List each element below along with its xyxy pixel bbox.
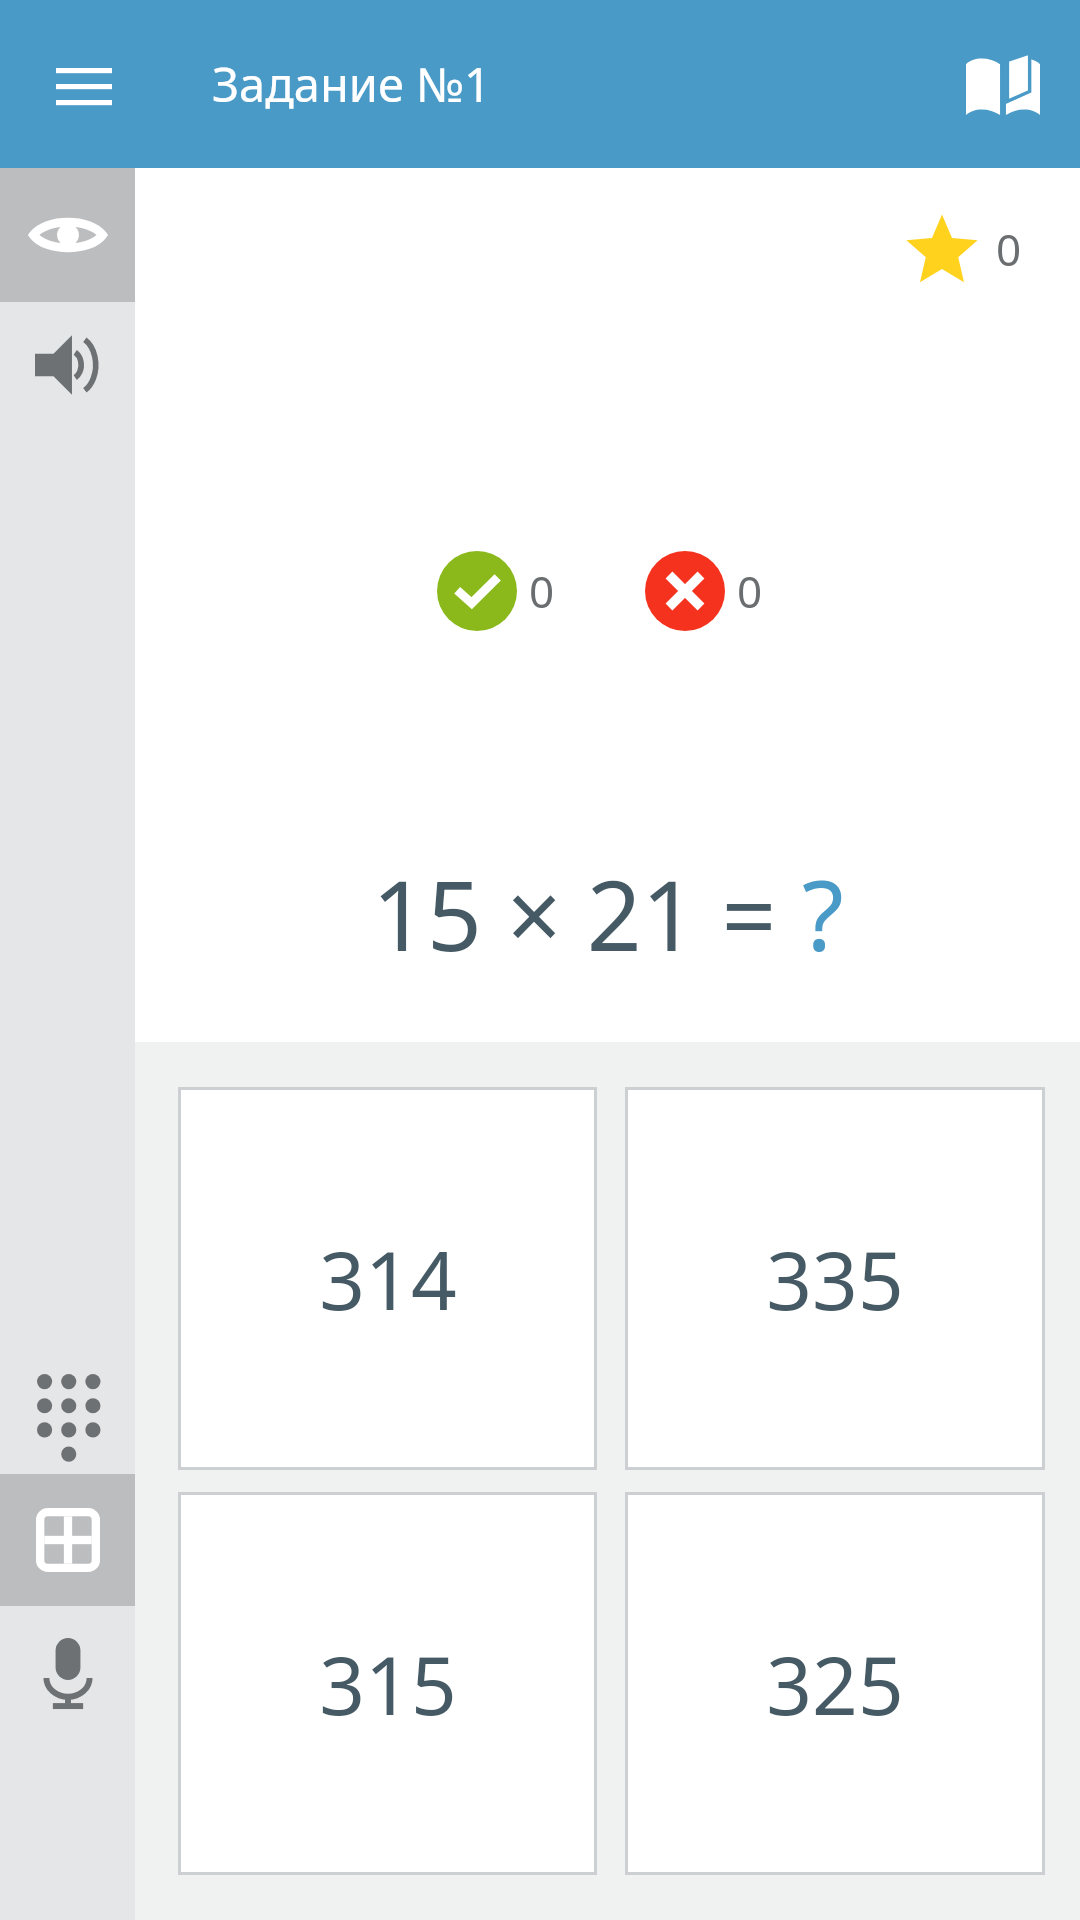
staticText: 0 xyxy=(996,219,1022,279)
staticText: 314 xyxy=(319,1224,457,1333)
staticText: 0 xyxy=(737,561,763,621)
staticText: 325 xyxy=(766,1629,904,1738)
button[interactable]: Sound xyxy=(0,302,135,428)
button[interactable]: Show answer xyxy=(0,168,135,302)
staticText: 15 × 21 = xyxy=(372,848,802,979)
button[interactable]: 335 xyxy=(625,1087,1045,1470)
button[interactable]: Keypad input xyxy=(0,1340,135,1474)
button[interactable]: 315 xyxy=(178,1492,597,1875)
staticText: 335 xyxy=(766,1224,904,1333)
button[interactable]: 325 xyxy=(625,1492,1045,1875)
button[interactable]: 314 xyxy=(178,1087,597,1470)
button[interactable]: Menu xyxy=(30,30,138,138)
staticText: ? xyxy=(802,848,844,979)
button[interactable]: Voice input xyxy=(0,1606,135,1740)
button[interactable]: Choice input xyxy=(0,1474,135,1606)
staticText: 0 xyxy=(529,561,555,621)
staticText: 315 xyxy=(319,1629,457,1738)
staticText: Задание №1 xyxy=(212,52,491,116)
button[interactable]: Dictionary xyxy=(948,29,1058,139)
